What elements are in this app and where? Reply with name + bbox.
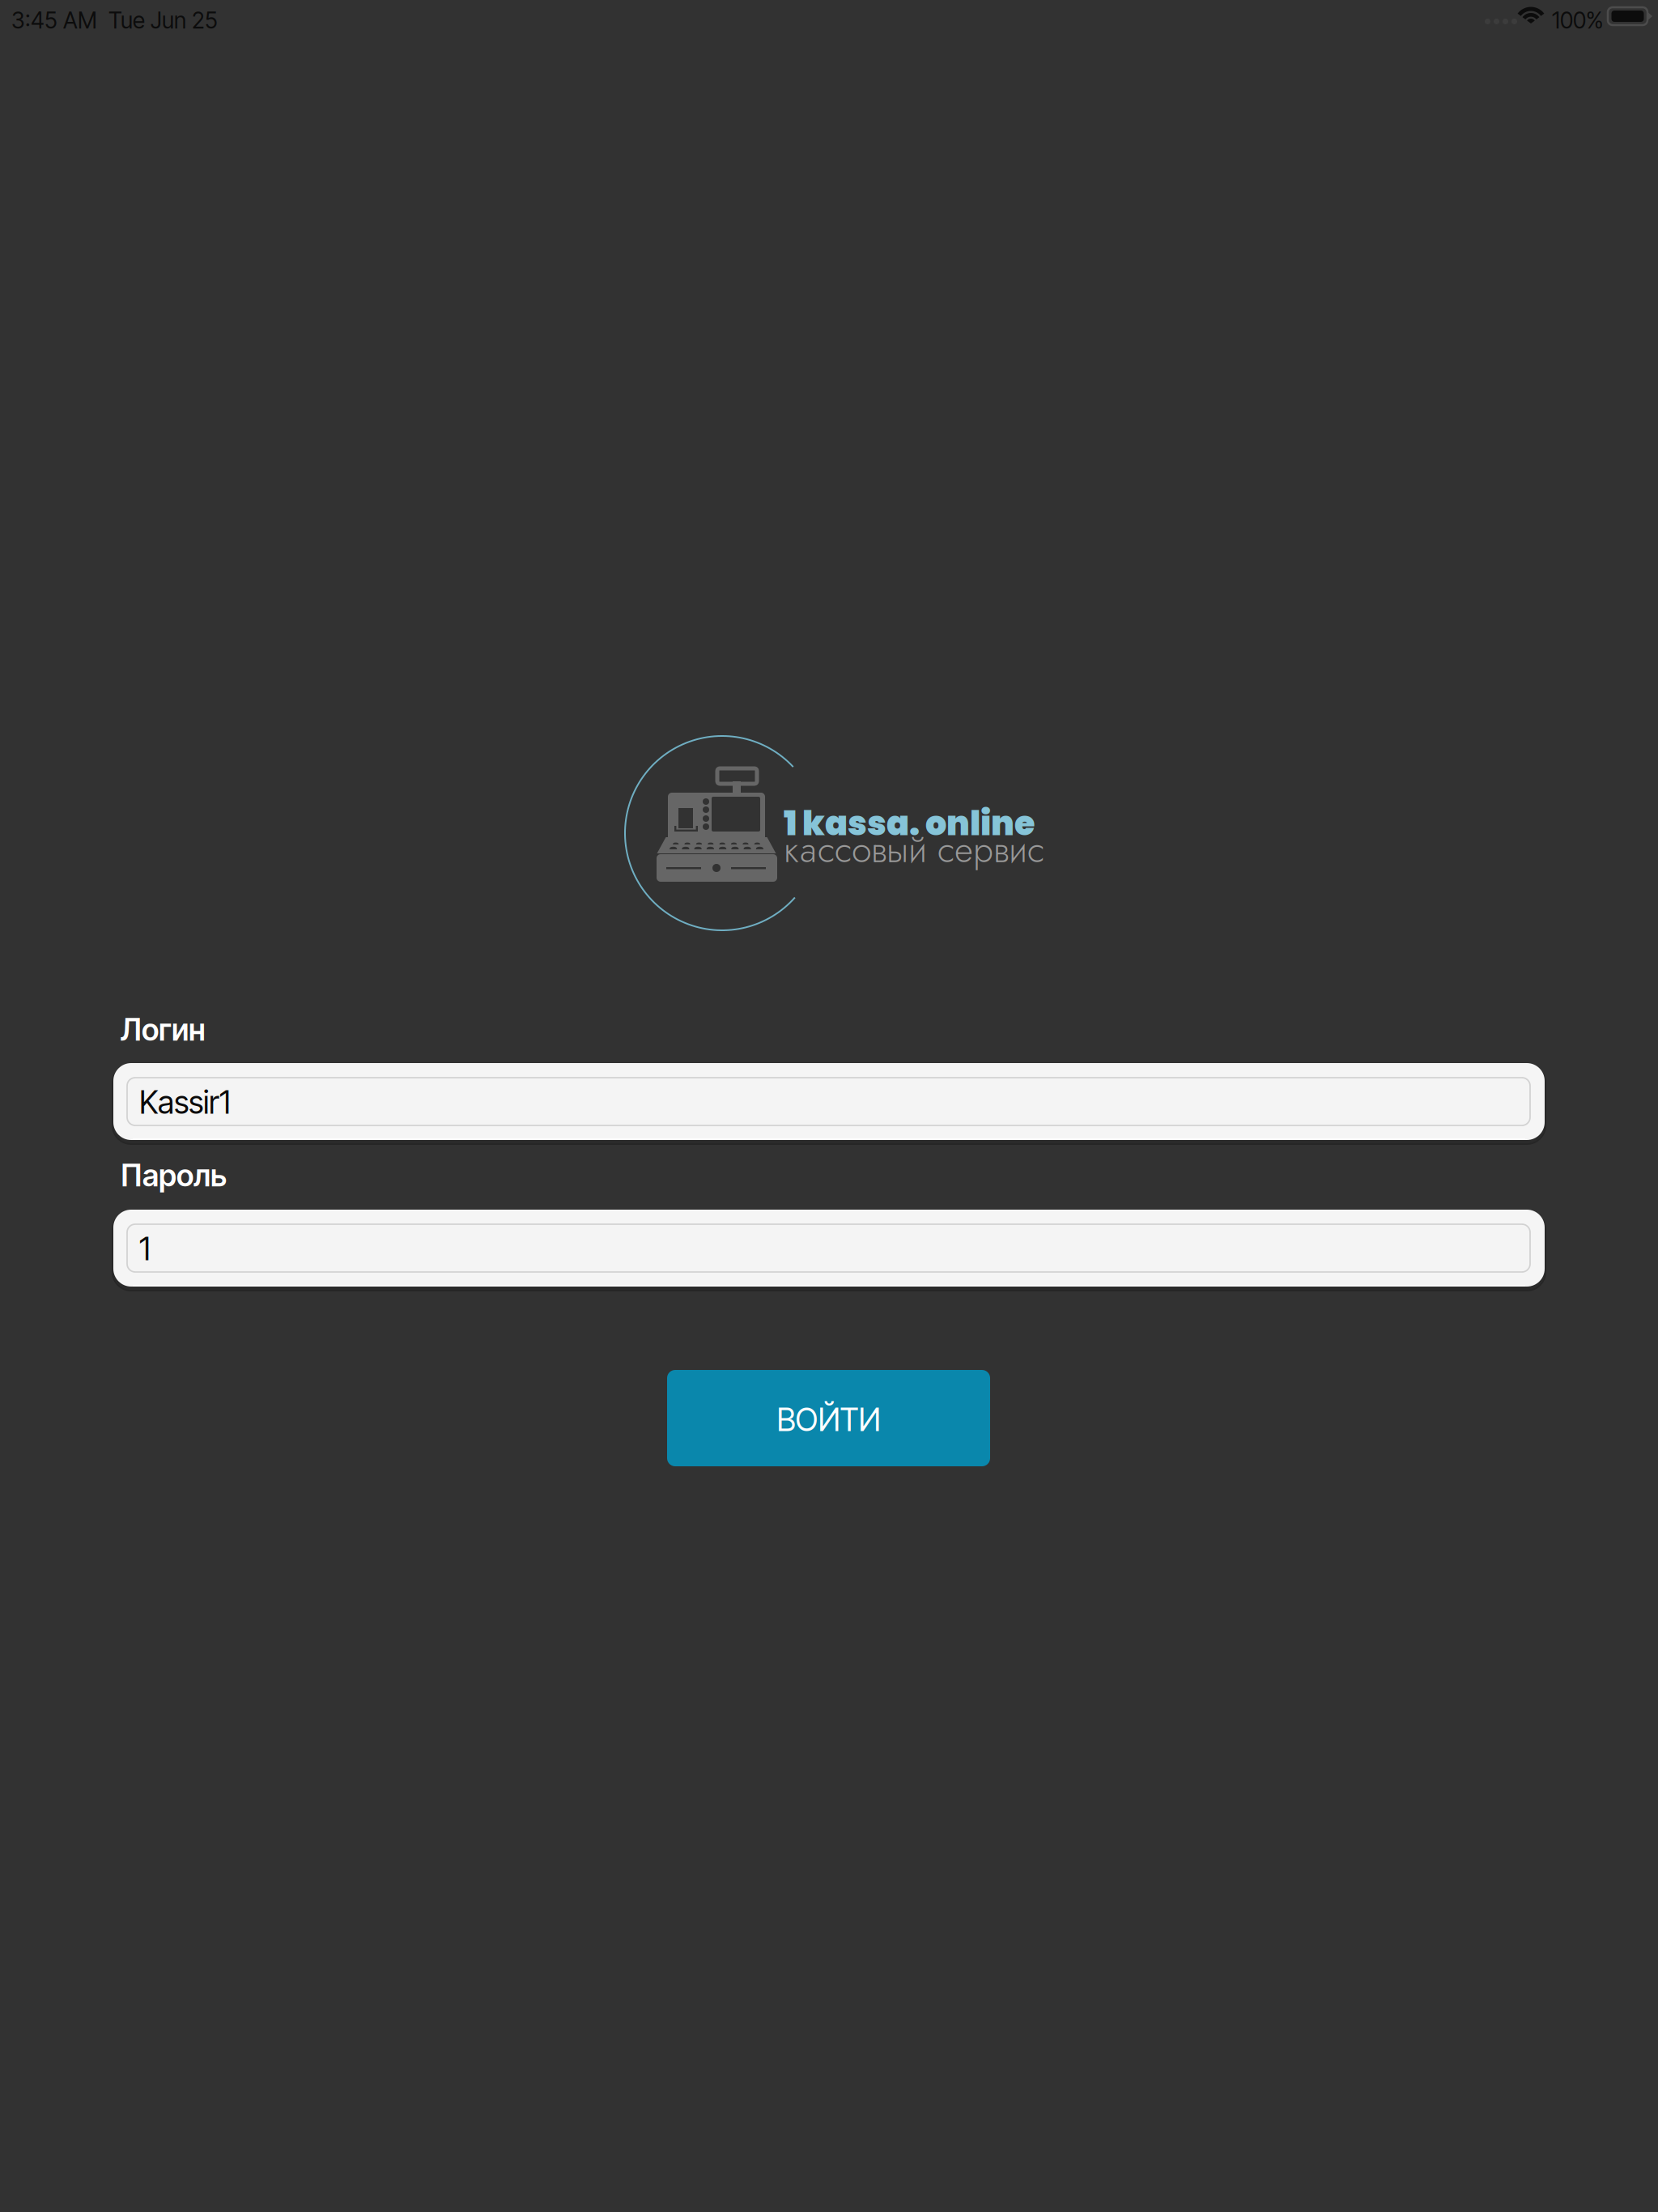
- staticText: Пароль: [121, 1157, 227, 1194]
- staticText: 1 kassa. online: [784, 800, 1035, 847]
- staticText: 1: [139, 1230, 151, 1268]
- staticText: Kassir1: [139, 1083, 231, 1121]
- staticText: 3:45 AM: [11, 6, 97, 34]
- staticText: кассовый сервис: [784, 823, 1044, 876]
- staticText: Логин: [121, 1011, 206, 1048]
- staticText: ВОЙТИ: [777, 1401, 880, 1439]
- button[interactable]: Пароль: [113, 1210, 1545, 1287]
- button[interactable]: ВОЙТИ: [667, 1370, 990, 1466]
- staticText: Tue Jun 25: [108, 6, 218, 34]
- button[interactable]: Логин: [113, 1063, 1545, 1140]
- staticText: 100%: [1552, 6, 1603, 34]
